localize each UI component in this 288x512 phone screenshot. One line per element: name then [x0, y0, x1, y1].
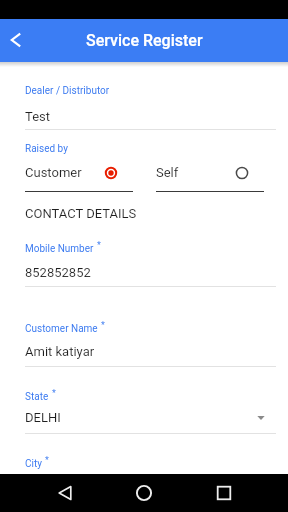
staticText: DELHI [25, 410, 61, 425]
staticText: * [97, 240, 101, 251]
staticText: Service Register [86, 31, 203, 50]
button[interactable]: Self [231, 162, 253, 184]
staticText: Raised by [25, 143, 68, 155]
staticText: Self [156, 165, 179, 180]
staticText: Test [25, 109, 50, 124]
staticText: Dealer / Distributor [25, 85, 110, 97]
staticText: * [45, 455, 49, 466]
staticText: Mobile Number [25, 243, 94, 255]
staticText: 852852852 [25, 265, 91, 280]
button[interactable]: Recent apps [204, 474, 244, 512]
staticText: * [101, 320, 105, 331]
staticText: State [25, 391, 49, 403]
button[interactable]: Back [45, 474, 85, 512]
staticText: Customer Name [25, 323, 98, 335]
button[interactable]: Select state [251, 408, 271, 428]
button[interactable]: Customer selected [100, 162, 122, 184]
staticText: Customer [25, 165, 82, 180]
staticText: City [25, 458, 42, 470]
staticText: CONTACT DETAILS [25, 206, 137, 221]
staticText: Amit katiyar [25, 344, 95, 359]
button[interactable]: Home [124, 474, 164, 512]
staticText: * [52, 388, 56, 399]
button[interactable]: Navigate up [4, 29, 28, 53]
